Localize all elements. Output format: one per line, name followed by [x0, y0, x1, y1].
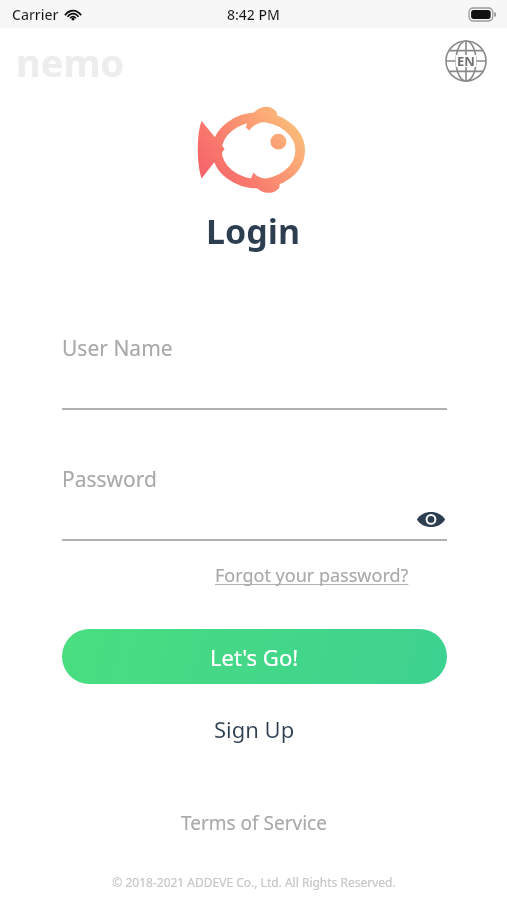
button[interactable]: nemo — [16, 36, 125, 88]
staticText: EN — [457, 52, 475, 70]
staticText: © 2018-2021 ADDEVE Co., Ltd. All Rights … — [112, 874, 396, 890]
staticText: Forgot your password? — [215, 563, 409, 588]
button[interactable]: Forgot your password? — [215, 560, 409, 590]
staticText: Sign Up — [214, 714, 295, 744]
button[interactable]: Terms of Service — [173, 806, 335, 840]
staticText: User Name — [62, 334, 173, 363]
button[interactable]: Show password — [412, 502, 450, 536]
staticText: Let's Go! — [210, 642, 299, 672]
button[interactable]: Sign Up — [62, 702, 447, 755]
button[interactable]: Language: English — [443, 38, 489, 84]
staticText: Login — [206, 208, 301, 254]
button[interactable]: Password — [62, 453, 447, 541]
button[interactable]: User Name — [62, 322, 447, 410]
staticText: nemo — [16, 36, 125, 88]
staticText: 8:42 PM — [227, 5, 280, 24]
button[interactable]: Let's Go! — [62, 629, 447, 684]
staticText: Terms of Service — [181, 810, 327, 836]
staticText: Carrier — [12, 5, 59, 24]
staticText: Password — [62, 465, 157, 494]
